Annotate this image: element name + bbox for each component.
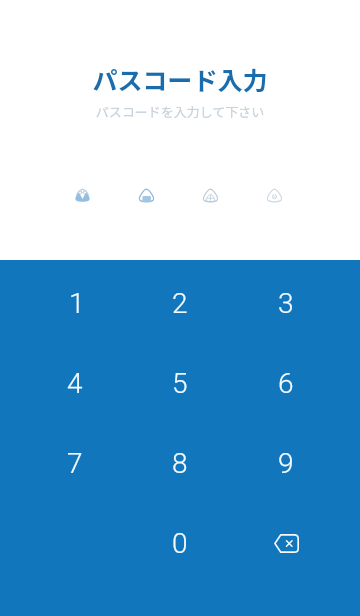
button[interactable]: 5 [142,354,218,412]
button[interactable]: 7 [37,434,113,492]
button[interactable]: 4 [37,354,113,412]
staticText: 2 [172,287,188,320]
button[interactable]: 2 [142,274,218,332]
staticText: パスコードを入力して下さい [0,102,360,121]
staticText: 7 [67,447,83,480]
staticText: 1 [69,287,85,320]
staticText: パスコード入力 [0,61,360,97]
button[interactable]: 8 [142,434,218,492]
button[interactable]: 0 [142,514,218,572]
staticText: 3 [278,287,294,320]
button[interactable]: 6 [248,354,324,412]
staticText: 5 [172,367,188,400]
staticText: 6 [278,367,294,400]
button[interactable]: 1 [37,274,113,332]
staticText: 9 [278,447,294,480]
button[interactable]: 9 [248,434,324,492]
staticText: 8 [172,447,188,480]
button[interactable]: 3 [248,274,324,332]
staticText: 4 [67,367,83,400]
staticText: 0 [172,527,188,560]
button[interactable]: Delete [248,514,324,572]
